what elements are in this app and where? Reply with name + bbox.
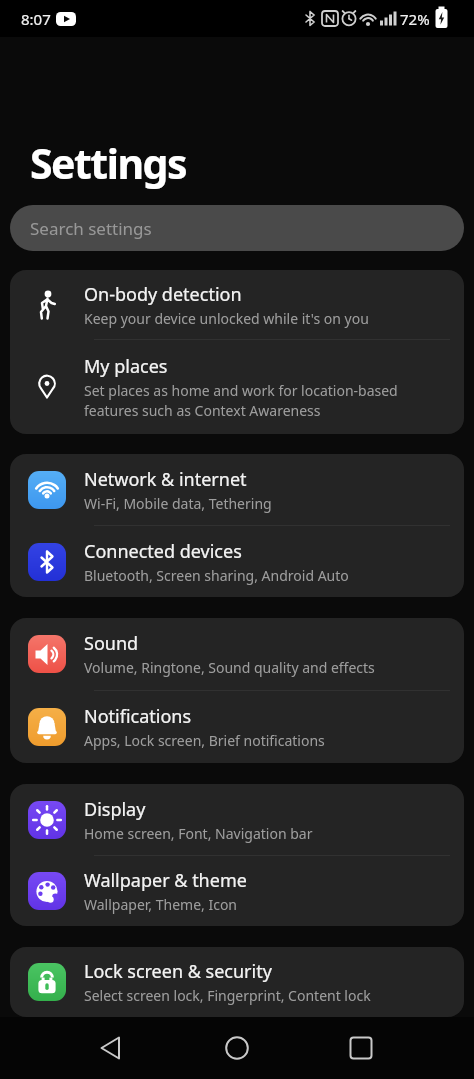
staticText: Wi-Fi, Mobile data, Tethering <box>84 494 272 513</box>
staticText: On-body detection <box>84 282 242 307</box>
staticText: Keep your device unlocked while it's on … <box>84 309 369 328</box>
staticText: My places <box>84 354 168 379</box>
staticText: Apps, Lock screen, Brief notifications <box>84 731 325 750</box>
button[interactable]: Lock screen & security <box>10 947 464 1017</box>
button[interactable]: Sound <box>10 618 464 690</box>
staticText: Search settings <box>30 217 152 240</box>
button[interactable] <box>337 1024 385 1072</box>
staticText: 72% <box>400 9 430 29</box>
staticText: Connected devices <box>84 539 242 564</box>
button[interactable] <box>87 1024 135 1072</box>
button[interactable]: On-body detection <box>10 270 464 339</box>
staticText: Network & internet <box>84 467 247 492</box>
staticText: Sound <box>84 631 139 656</box>
staticText: Volume, Ringtone, Sound quality and effe… <box>84 658 375 677</box>
staticText: Display <box>84 797 146 822</box>
staticText: Set places as home and work for location… <box>84 381 398 420</box>
staticText: Wallpaper, Theme, Icon <box>84 895 238 914</box>
staticText: Lock screen & security <box>84 959 272 984</box>
staticText: Bluetooth, Screen sharing, Android Auto <box>84 566 349 585</box>
staticText: Wallpaper & theme <box>84 868 247 893</box>
button[interactable]: Wallpaper & theme <box>10 856 464 926</box>
button[interactable]: Connected devices <box>10 526 464 597</box>
staticText: Notifications <box>84 704 192 729</box>
button[interactable]: My places <box>10 340 464 434</box>
button[interactable] <box>213 1024 261 1072</box>
button[interactable]: Search settings <box>10 205 464 251</box>
staticText: Home screen, Font, Navigation bar <box>84 824 313 843</box>
staticText: Select screen lock, Fingerprint, Content… <box>84 986 371 1005</box>
staticText: 8:07 <box>21 9 51 29</box>
staticText: Settings <box>30 135 187 191</box>
button[interactable]: Network & internet <box>10 454 464 525</box>
button[interactable]: Notifications <box>10 691 464 763</box>
button[interactable]: Display <box>10 784 464 855</box>
